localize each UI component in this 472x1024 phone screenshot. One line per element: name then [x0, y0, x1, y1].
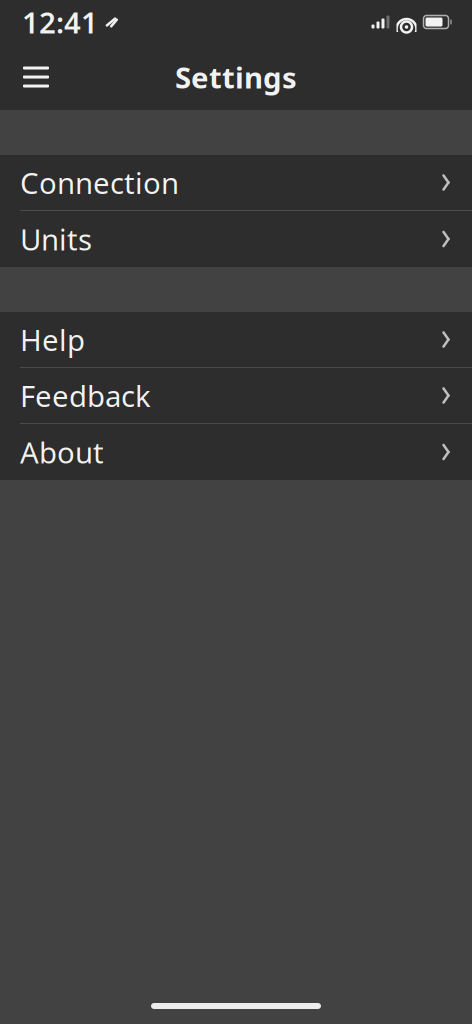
staticText: Settings — [175, 57, 297, 96]
button[interactable]: Help — [0, 312, 472, 368]
button[interactable]: Menu — [12, 53, 60, 101]
button[interactable]: Feedback — [0, 368, 472, 424]
staticText: Connection — [20, 163, 179, 202]
staticText: Help — [20, 320, 85, 359]
button[interactable]: Connection — [0, 155, 472, 211]
staticText: 12:41 — [22, 2, 98, 41]
staticText: Feedback — [20, 376, 151, 415]
button[interactable]: About — [0, 424, 472, 480]
staticText: About — [20, 432, 104, 471]
button[interactable]: Units — [0, 211, 472, 267]
staticText: Units — [20, 219, 92, 258]
